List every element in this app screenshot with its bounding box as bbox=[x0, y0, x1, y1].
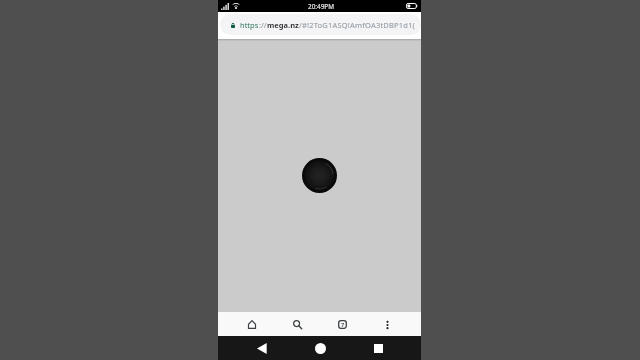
button[interactable]: Home bbox=[314, 336, 326, 360]
staticText: :// bbox=[259, 20, 267, 30]
staticText: mega.nz bbox=[267, 20, 299, 30]
button[interactable]: Back bbox=[256, 336, 268, 360]
button[interactable]: Switch tabs bbox=[332, 312, 352, 336]
button[interactable]: More options bbox=[377, 312, 397, 336]
staticText: /#!2ToG1ASQ!AmfOA3tDBP1d1( bbox=[299, 20, 416, 30]
staticText: 20:49PM bbox=[308, 2, 334, 11]
staticText: https bbox=[240, 20, 259, 30]
button[interactable]: Home bbox=[242, 312, 262, 336]
button[interactable]: Search bbox=[287, 312, 307, 336]
button[interactable]: Address bar bbox=[220, 14, 421, 35]
button[interactable]: Recent apps bbox=[372, 336, 384, 360]
staticText: 7 bbox=[341, 321, 345, 328]
